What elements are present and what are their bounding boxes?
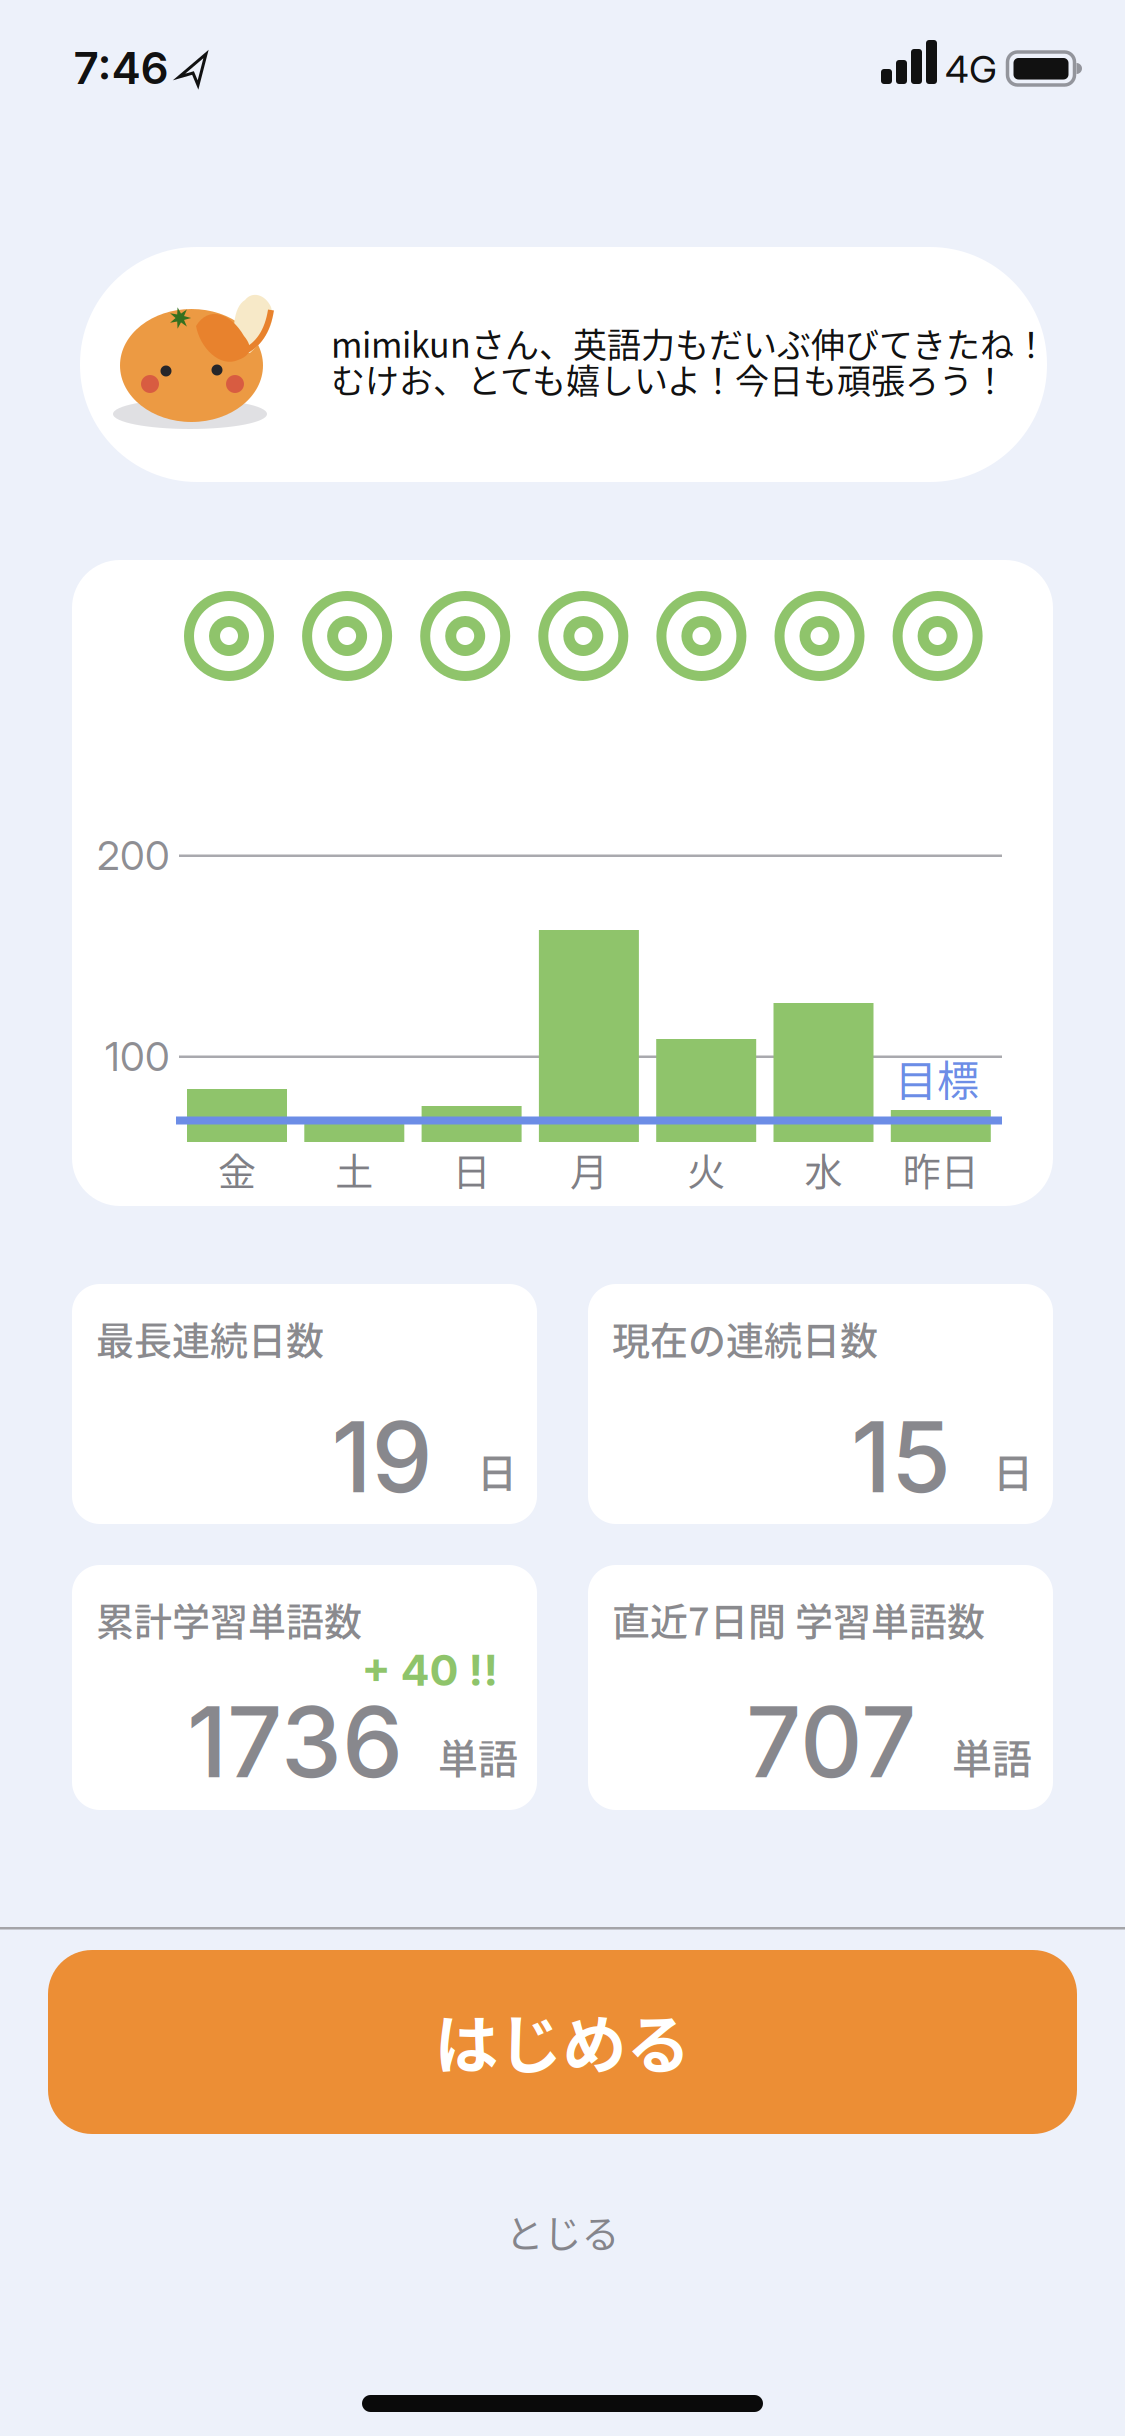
staticText: 現在の連続日数 [612,1310,878,1365]
staticText: 月 [570,1141,608,1196]
staticText: 火 [687,1141,725,1196]
staticText: 日 [993,1441,1033,1499]
staticText: + 40 !! [361,1644,498,1696]
staticText: 707 [746,1683,916,1801]
staticText: 1736 [187,1683,403,1801]
staticText: 水 [804,1141,842,1196]
staticText: 単語 [438,1727,518,1785]
staticText: 最長連続日数 [96,1310,324,1365]
staticText: 200 [97,831,170,880]
staticText: 金 [218,1141,256,1196]
staticText: 日 [477,1441,517,1499]
staticText: むけお、とても嬉しいよ！今日も頑張ろう！ [331,354,1007,404]
staticText: 目標 [895,1048,979,1108]
staticText: mimikunさん、英語力もだいぶ伸びてきたね！ [331,318,1048,368]
staticText: とじる [505,2203,619,2258]
staticText: 土 [335,1141,373,1196]
staticText: 100 [105,1032,170,1081]
staticText: 15 [851,1398,951,1516]
staticText: 直近7日間 学習単語数 [612,1591,985,1646]
staticText: 19 [331,1398,432,1516]
staticText: 4G [945,46,997,92]
staticText: 単語 [952,1727,1032,1785]
staticText: 昨日 [903,1141,979,1196]
staticText: 日 [453,1141,491,1196]
staticText: 累計学習単語数 [96,1591,362,1646]
staticText: はじめる [434,1994,690,2086]
staticText: 7:46 [73,41,168,95]
